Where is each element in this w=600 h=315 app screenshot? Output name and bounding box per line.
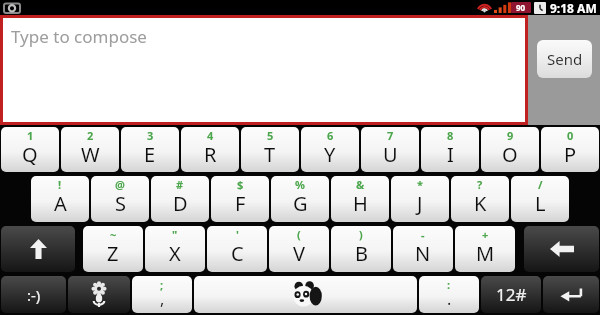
staticText: 8	[447, 128, 454, 143]
button[interactable]: +	[455, 226, 515, 272]
button[interactable]: #	[151, 176, 209, 222]
staticText: $	[237, 177, 244, 192]
staticText: G	[293, 190, 308, 217]
button[interactable]: Backspace	[524, 226, 599, 272]
button[interactable]: *	[391, 176, 449, 222]
staticText: 5	[267, 128, 274, 143]
button[interactable]: :	[419, 276, 479, 313]
button[interactable]: (	[269, 226, 329, 272]
staticText: Y	[324, 141, 336, 168]
button[interactable]: !	[31, 176, 89, 222]
staticText: H	[353, 190, 368, 217]
staticText: .	[447, 288, 452, 310]
button[interactable]: 8	[421, 127, 479, 172]
staticText: E	[144, 141, 156, 168]
staticText: B	[355, 240, 368, 267]
button[interactable]: Voice input and settings	[68, 276, 130, 313]
staticText: F	[235, 190, 246, 217]
button[interactable]: ?	[451, 176, 509, 222]
button[interactable]: "	[145, 226, 205, 272]
staticText: 1	[27, 128, 34, 143]
staticText: 6	[327, 128, 334, 143]
staticText: &	[356, 177, 365, 192]
staticText: 2	[87, 128, 94, 143]
staticText: C	[231, 240, 244, 267]
staticText: +	[482, 227, 489, 242]
staticText: V	[293, 240, 305, 267]
button[interactable]: '	[207, 226, 267, 272]
staticText: ,	[160, 288, 165, 310]
staticText: J	[417, 190, 423, 217]
staticText: 4	[207, 128, 214, 143]
staticText: :-)	[27, 285, 41, 305]
staticText: !	[58, 177, 62, 192]
staticText: Type to compose	[11, 25, 147, 48]
button[interactable]: 0	[541, 127, 599, 172]
staticText: M	[476, 240, 495, 267]
staticText: -	[421, 227, 425, 242]
button[interactable]: Send	[537, 40, 592, 78]
staticText: 9	[507, 128, 514, 143]
staticText: "	[172, 227, 178, 242]
staticText: 0	[567, 128, 574, 143]
staticText: *	[417, 177, 423, 192]
staticText: '	[236, 227, 239, 242]
button[interactable]: Enter	[543, 276, 599, 313]
staticText: 3	[147, 128, 154, 143]
button[interactable]: 6	[301, 127, 359, 172]
staticText: D	[173, 190, 188, 217]
button[interactable]: %	[271, 176, 329, 222]
staticText: ~	[110, 227, 117, 242]
staticText: U	[383, 141, 398, 168]
staticText: X	[169, 240, 181, 267]
staticText: Z	[107, 240, 119, 267]
staticText: ?	[477, 177, 483, 192]
staticText: 90	[516, 2, 526, 13]
button[interactable]: &	[331, 176, 389, 222]
staticText: N	[415, 240, 431, 267]
staticText: :	[447, 277, 451, 292]
button[interactable]: 9	[481, 127, 539, 172]
staticText: T	[264, 141, 276, 168]
staticText: P	[564, 141, 577, 168]
staticText: #	[176, 177, 184, 192]
button[interactable]: 7	[361, 127, 419, 172]
staticText: K	[474, 190, 487, 217]
staticText: R	[204, 141, 217, 168]
staticText: %	[295, 177, 305, 192]
staticText: O	[502, 141, 518, 168]
button[interactable]: ;	[132, 276, 192, 313]
staticText: )	[359, 227, 363, 242]
staticText: I	[447, 141, 454, 168]
button[interactable]: @	[91, 176, 149, 222]
staticText: 12#	[496, 283, 527, 306]
staticText: Q	[22, 141, 38, 168]
staticText: A	[54, 190, 67, 217]
staticText: @	[115, 177, 125, 192]
staticText: (	[297, 227, 301, 242]
button[interactable]: $	[211, 176, 269, 222]
staticText: 9:18 AM	[550, 0, 597, 15]
button[interactable]: 1	[1, 127, 59, 172]
staticText: Send	[547, 49, 583, 69]
staticText: L	[535, 190, 546, 217]
button[interactable]: Shift	[1, 226, 75, 272]
button[interactable]: )	[331, 226, 391, 272]
button[interactable]: ~	[83, 226, 143, 272]
button[interactable]: 4	[181, 127, 239, 172]
staticText: S	[115, 190, 126, 217]
staticText: W	[81, 141, 100, 168]
button[interactable]: Emoji	[1, 276, 66, 313]
button[interactable]: 2	[61, 127, 119, 172]
staticText: /	[538, 177, 543, 192]
button[interactable]: Space	[194, 276, 417, 313]
button[interactable]: Numbers and symbols	[481, 276, 541, 313]
button[interactable]: Type to compose	[3, 18, 525, 122]
staticText: 7	[387, 128, 394, 143]
button[interactable]: 3	[121, 127, 179, 172]
button[interactable]: -	[393, 226, 453, 272]
staticText: ;	[160, 277, 164, 292]
button[interactable]: 5	[241, 127, 299, 172]
button[interactable]: /	[511, 176, 569, 222]
